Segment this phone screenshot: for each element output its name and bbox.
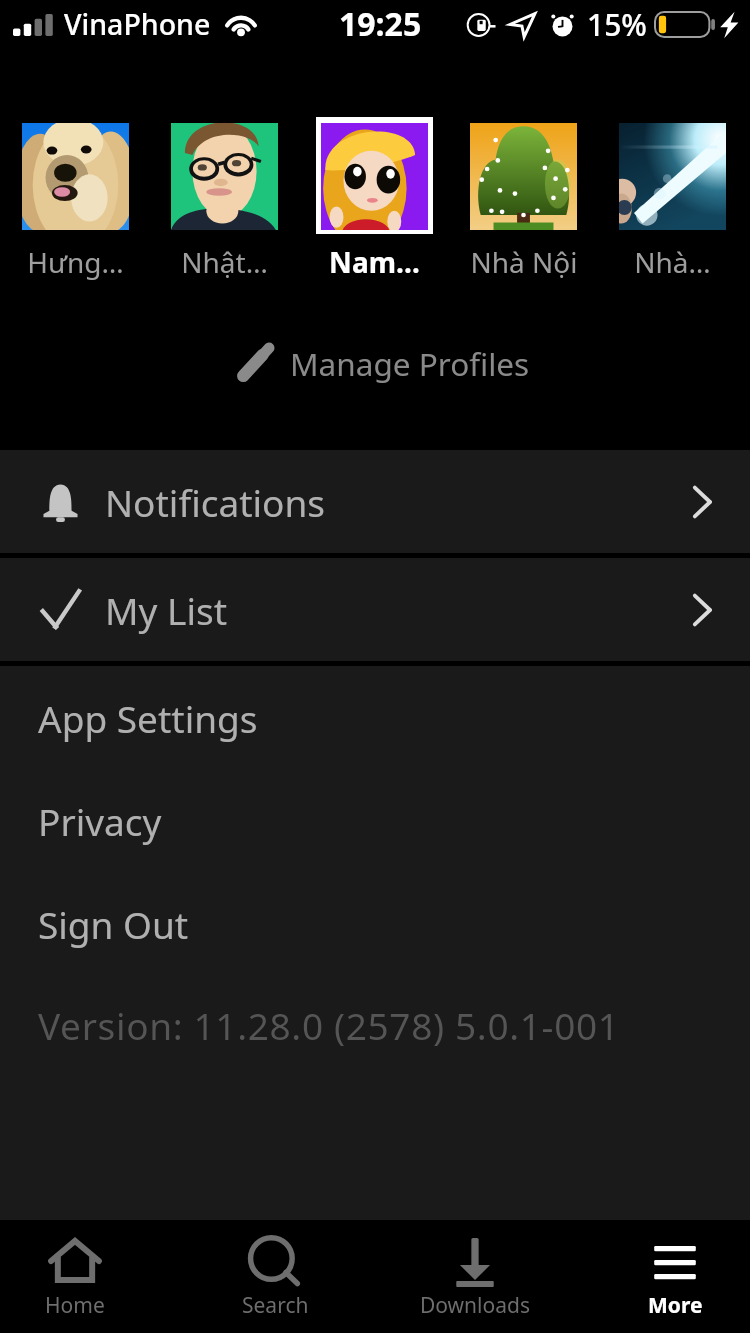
staticText: Nhà…: [634, 243, 711, 277]
staticText: Nam…: [329, 243, 420, 277]
staticText: Sign Out: [38, 899, 189, 949]
staticText: Downloads: [420, 1291, 530, 1320]
button[interactable]: Profile Nhà…: [619, 123, 726, 281]
staticText: Notifications: [105, 477, 326, 527]
staticText: App Settings: [38, 693, 258, 743]
staticText: Privacy: [38, 796, 162, 846]
button[interactable]: Manage Profiles: [220, 336, 546, 390]
button[interactable]: Downloads: [400, 1220, 550, 1333]
staticText: VinaPhone: [64, 5, 211, 44]
staticText: Hưng…: [27, 243, 124, 277]
button[interactable]: Search: [200, 1220, 350, 1333]
button[interactable]: Privacy: [0, 769, 750, 872]
staticText: Search: [242, 1291, 309, 1320]
staticText: 15%: [587, 4, 647, 45]
button[interactable]: Profile Nam…: [321, 123, 428, 281]
button[interactable]: Home: [0, 1220, 150, 1333]
staticText: Manage Profiles: [290, 342, 530, 384]
button[interactable]: Notifications: [0, 450, 750, 553]
staticText: Home: [45, 1291, 105, 1320]
button[interactable]: Profile Nhật…: [171, 123, 278, 281]
staticText: 19:25: [339, 2, 422, 46]
button[interactable]: Sign Out: [0, 872, 750, 975]
staticText: Nhật…: [181, 243, 268, 277]
button[interactable]: Profile Hưng…: [22, 123, 129, 281]
button[interactable]: More: [600, 1220, 750, 1333]
button[interactable]: App Settings: [0, 666, 750, 769]
staticText: More: [648, 1291, 703, 1320]
staticText: My List: [105, 585, 228, 635]
staticText: Version: 11.28.0 (2578) 5.0.1-001: [38, 1000, 620, 1050]
button[interactable]: Profile Nhà Nội: [470, 123, 577, 281]
staticText: Nhà Nội: [470, 243, 578, 277]
button[interactable]: My List: [0, 558, 750, 661]
